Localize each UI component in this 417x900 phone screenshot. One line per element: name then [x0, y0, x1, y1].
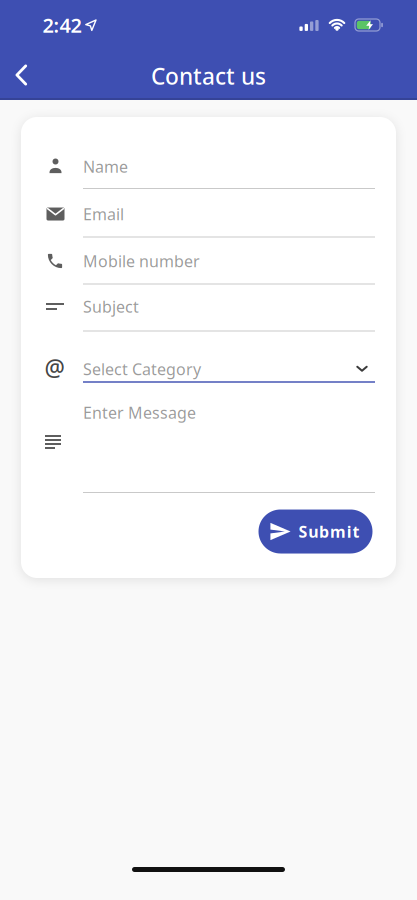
button[interactable]: Select Category — [83, 351, 375, 385]
button[interactable]: Subject — [83, 284, 375, 329]
staticText: Contact us — [151, 61, 266, 91]
staticText: Name — [83, 156, 128, 177]
staticText: Enter Message — [83, 402, 196, 423]
button[interactable]: Enter Message — [83, 398, 375, 492]
staticText: 2:42 — [42, 12, 81, 38]
staticText: Select Category — [83, 358, 201, 380]
button[interactable]: Email — [83, 191, 375, 236]
staticText: Subject — [83, 296, 139, 317]
staticText: Submit — [298, 521, 359, 542]
button[interactable]: Name — [83, 144, 375, 189]
staticText: Email — [83, 203, 124, 225]
button[interactable] — [15, 64, 27, 85]
button[interactable]: Submit — [258, 509, 372, 553]
staticText: Mobile number — [83, 250, 200, 272]
button[interactable]: Mobile number — [83, 238, 375, 283]
staticText: @ — [44, 352, 64, 382]
